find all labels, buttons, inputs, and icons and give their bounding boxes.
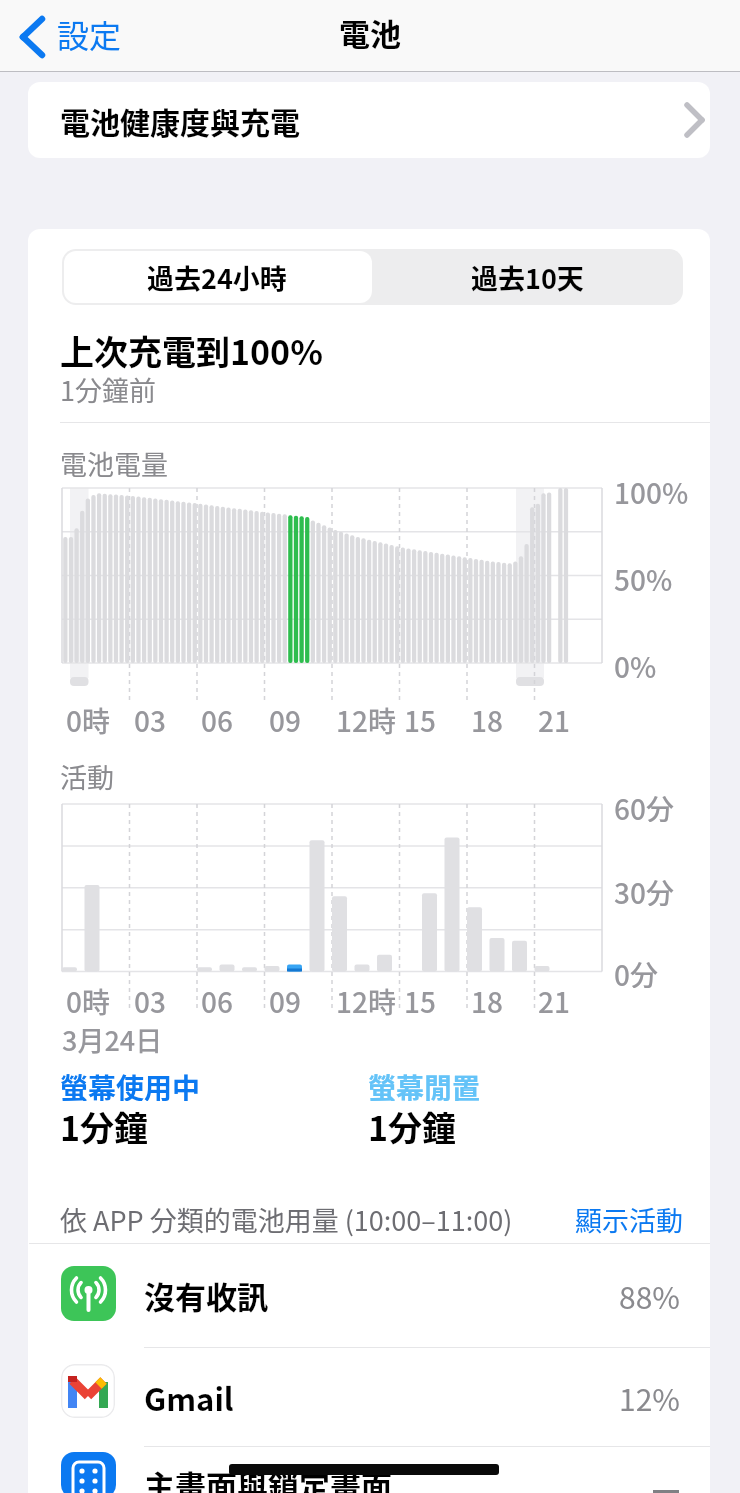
staticText: 12時 [336, 981, 396, 1017]
staticText: 06 [201, 981, 233, 1017]
staticText: 1分鐘 [368, 1102, 457, 1148]
staticText: 過去24小時 [147, 258, 287, 297]
staticText: 沒有收訊 [144, 1273, 268, 1318]
staticText: 18 [471, 700, 503, 736]
staticText: 06 [201, 700, 233, 736]
staticText: 設定 [57, 11, 122, 57]
staticText: 電池健康度與充電 [60, 99, 300, 142]
staticText: 過去10天 [471, 258, 584, 297]
staticText: 電池電量 [60, 444, 168, 480]
staticText: 30分 [614, 872, 674, 906]
button[interactable]: 電池健康度與充電 [28, 82, 710, 158]
staticText: 21 [538, 981, 570, 1017]
staticText: 18 [471, 981, 503, 1017]
staticText: 21 [538, 700, 570, 736]
staticText: 15 [404, 981, 436, 1017]
staticText: 0時 [66, 700, 110, 736]
staticText: 0% [614, 646, 657, 680]
staticText: 0分 [614, 954, 658, 988]
staticText: 主畫面與鎖定畫面 [144, 1462, 392, 1493]
staticText: 3月24日 [62, 1020, 163, 1056]
staticText: 03 [134, 700, 166, 736]
staticText: 顯示活動 [575, 1200, 683, 1239]
staticText: 50% [614, 559, 673, 593]
staticText: 1分鐘 [60, 1102, 149, 1148]
staticText: 09 [269, 700, 301, 736]
staticText: 12% [619, 1376, 680, 1419]
staticText: 螢幕閒置 [368, 1067, 481, 1101]
button[interactable]: 過去10天 [372, 249, 683, 305]
staticText: 上次充電到100% [60, 326, 323, 372]
staticText: Gmail [144, 1375, 234, 1420]
button[interactable]: 沒有收訊 [28, 1244, 710, 1347]
staticText: 100% [614, 472, 689, 506]
staticText: 15 [404, 700, 436, 736]
staticText: 88% [619, 1274, 680, 1317]
button[interactable]: 主畫面與鎖定畫面 [28, 1447, 710, 1493]
button[interactable]: 設定 [10, 6, 140, 62]
staticText: 0時 [66, 981, 110, 1017]
staticText: 03 [134, 981, 166, 1017]
button[interactable]: 顯示活動 [420, 1198, 683, 1240]
staticText: 電池 [339, 10, 401, 55]
button[interactable] [64, 251, 372, 303]
button[interactable]: Gmail [28, 1348, 710, 1446]
staticText: 依 APP 分類的電池用量 (10:00–11:00) [60, 1200, 513, 1239]
staticText: 1分鐘前 [60, 370, 156, 406]
staticText: 螢幕使用中 [60, 1067, 201, 1101]
staticText: 60分 [614, 788, 674, 822]
staticText: 09 [269, 981, 301, 1017]
staticText: 活動 [60, 757, 114, 793]
staticText: 12時 [336, 700, 396, 736]
